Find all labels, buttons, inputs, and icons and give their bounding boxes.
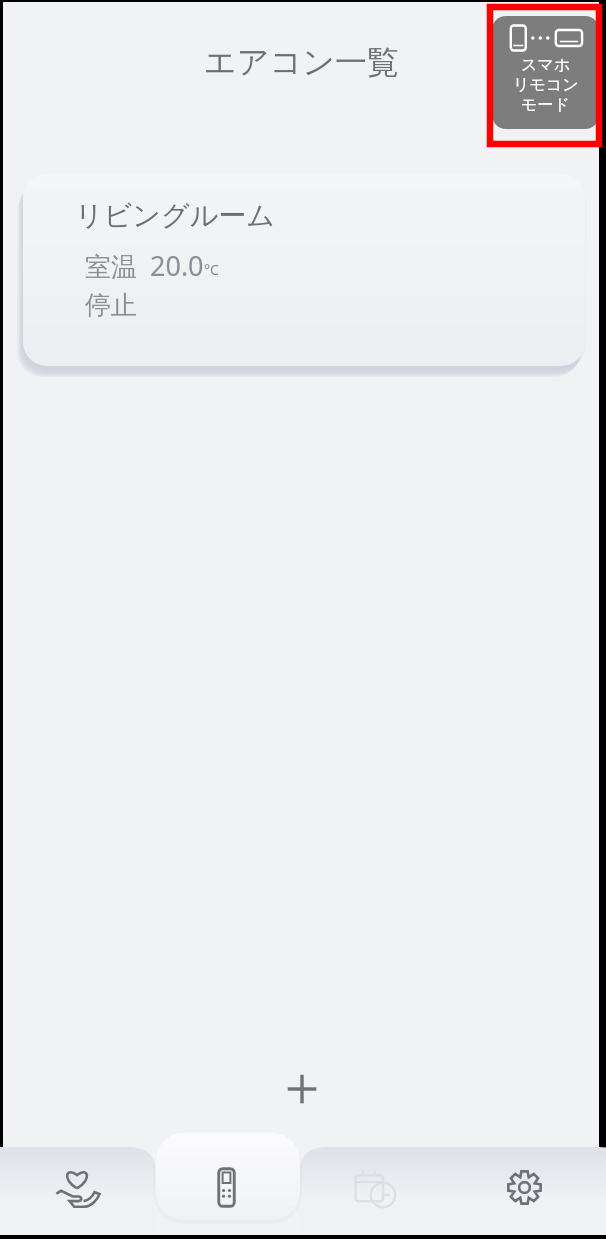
button[interactable]: スマホ xyxy=(492,16,599,129)
staticText: エアコン一覧 xyxy=(204,42,399,82)
button[interactable]: Add air conditioner xyxy=(271,1058,333,1120)
staticText: 室温 xyxy=(85,251,137,284)
staticText: °C xyxy=(204,260,219,279)
staticText: 停止 xyxy=(85,289,137,322)
staticText: リビングルーム xyxy=(75,198,275,233)
button[interactable]: Favorites xyxy=(3,1133,152,1235)
button[interactable]: Remote xyxy=(152,1133,301,1235)
button[interactable]: Settings xyxy=(450,1133,599,1235)
staticText: スマホ xyxy=(521,55,571,75)
staticText: リモコン xyxy=(513,75,579,95)
button[interactable]: Schedule xyxy=(301,1133,450,1235)
staticText: モード xyxy=(521,95,570,115)
button[interactable]: リビングルーム xyxy=(23,174,585,366)
staticText: 20.0 xyxy=(150,247,204,284)
